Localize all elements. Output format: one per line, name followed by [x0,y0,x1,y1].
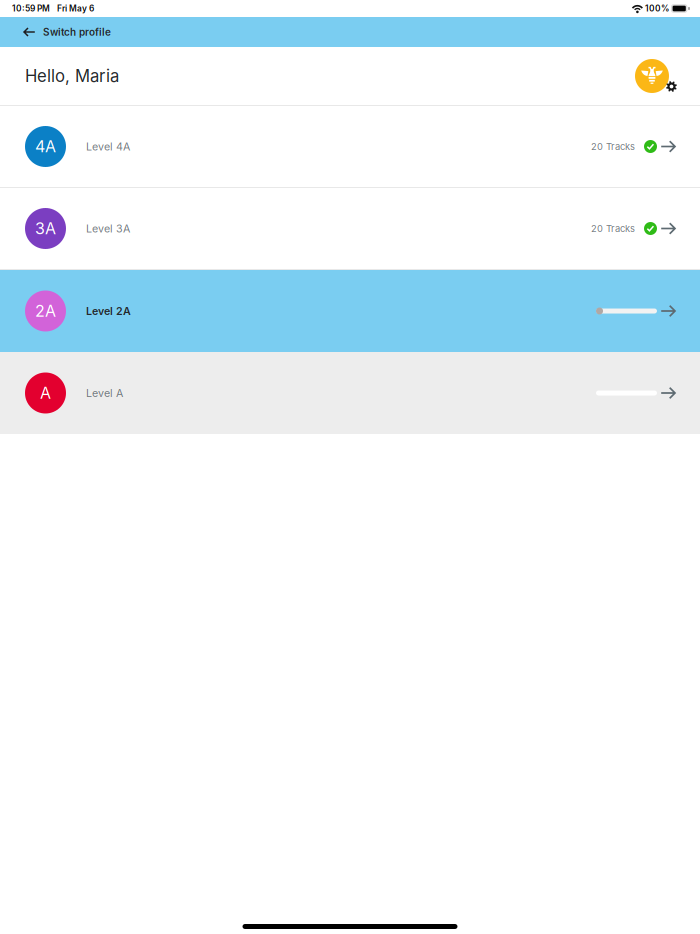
staticText: 20 Tracks [591,223,635,234]
staticText: 4A [35,137,56,156]
button[interactable]: A [0,352,700,434]
staticText: Hello, Maria [25,66,119,86]
staticText: Level A [86,386,123,399]
staticText: Level 3A [86,222,130,235]
staticText: Switch profile [43,26,111,38]
staticText: Fri May 6 [57,3,94,14]
staticText: 3A [35,219,56,238]
staticText: 100% [645,3,669,14]
button[interactable]: Switch profile [0,17,700,47]
button[interactable]: 2A [0,270,700,352]
staticText: 10:59 PM [12,3,50,14]
staticText: A [40,383,51,403]
staticText: 2A [35,301,56,321]
staticText: 20 Tracks [591,141,635,152]
button[interactable]: Profile settings [632,56,672,96]
staticText: Level 4A [86,140,130,153]
button[interactable]: 3A [0,188,700,270]
button[interactable]: 4A [0,106,700,188]
staticText: Level 2A [86,304,131,317]
